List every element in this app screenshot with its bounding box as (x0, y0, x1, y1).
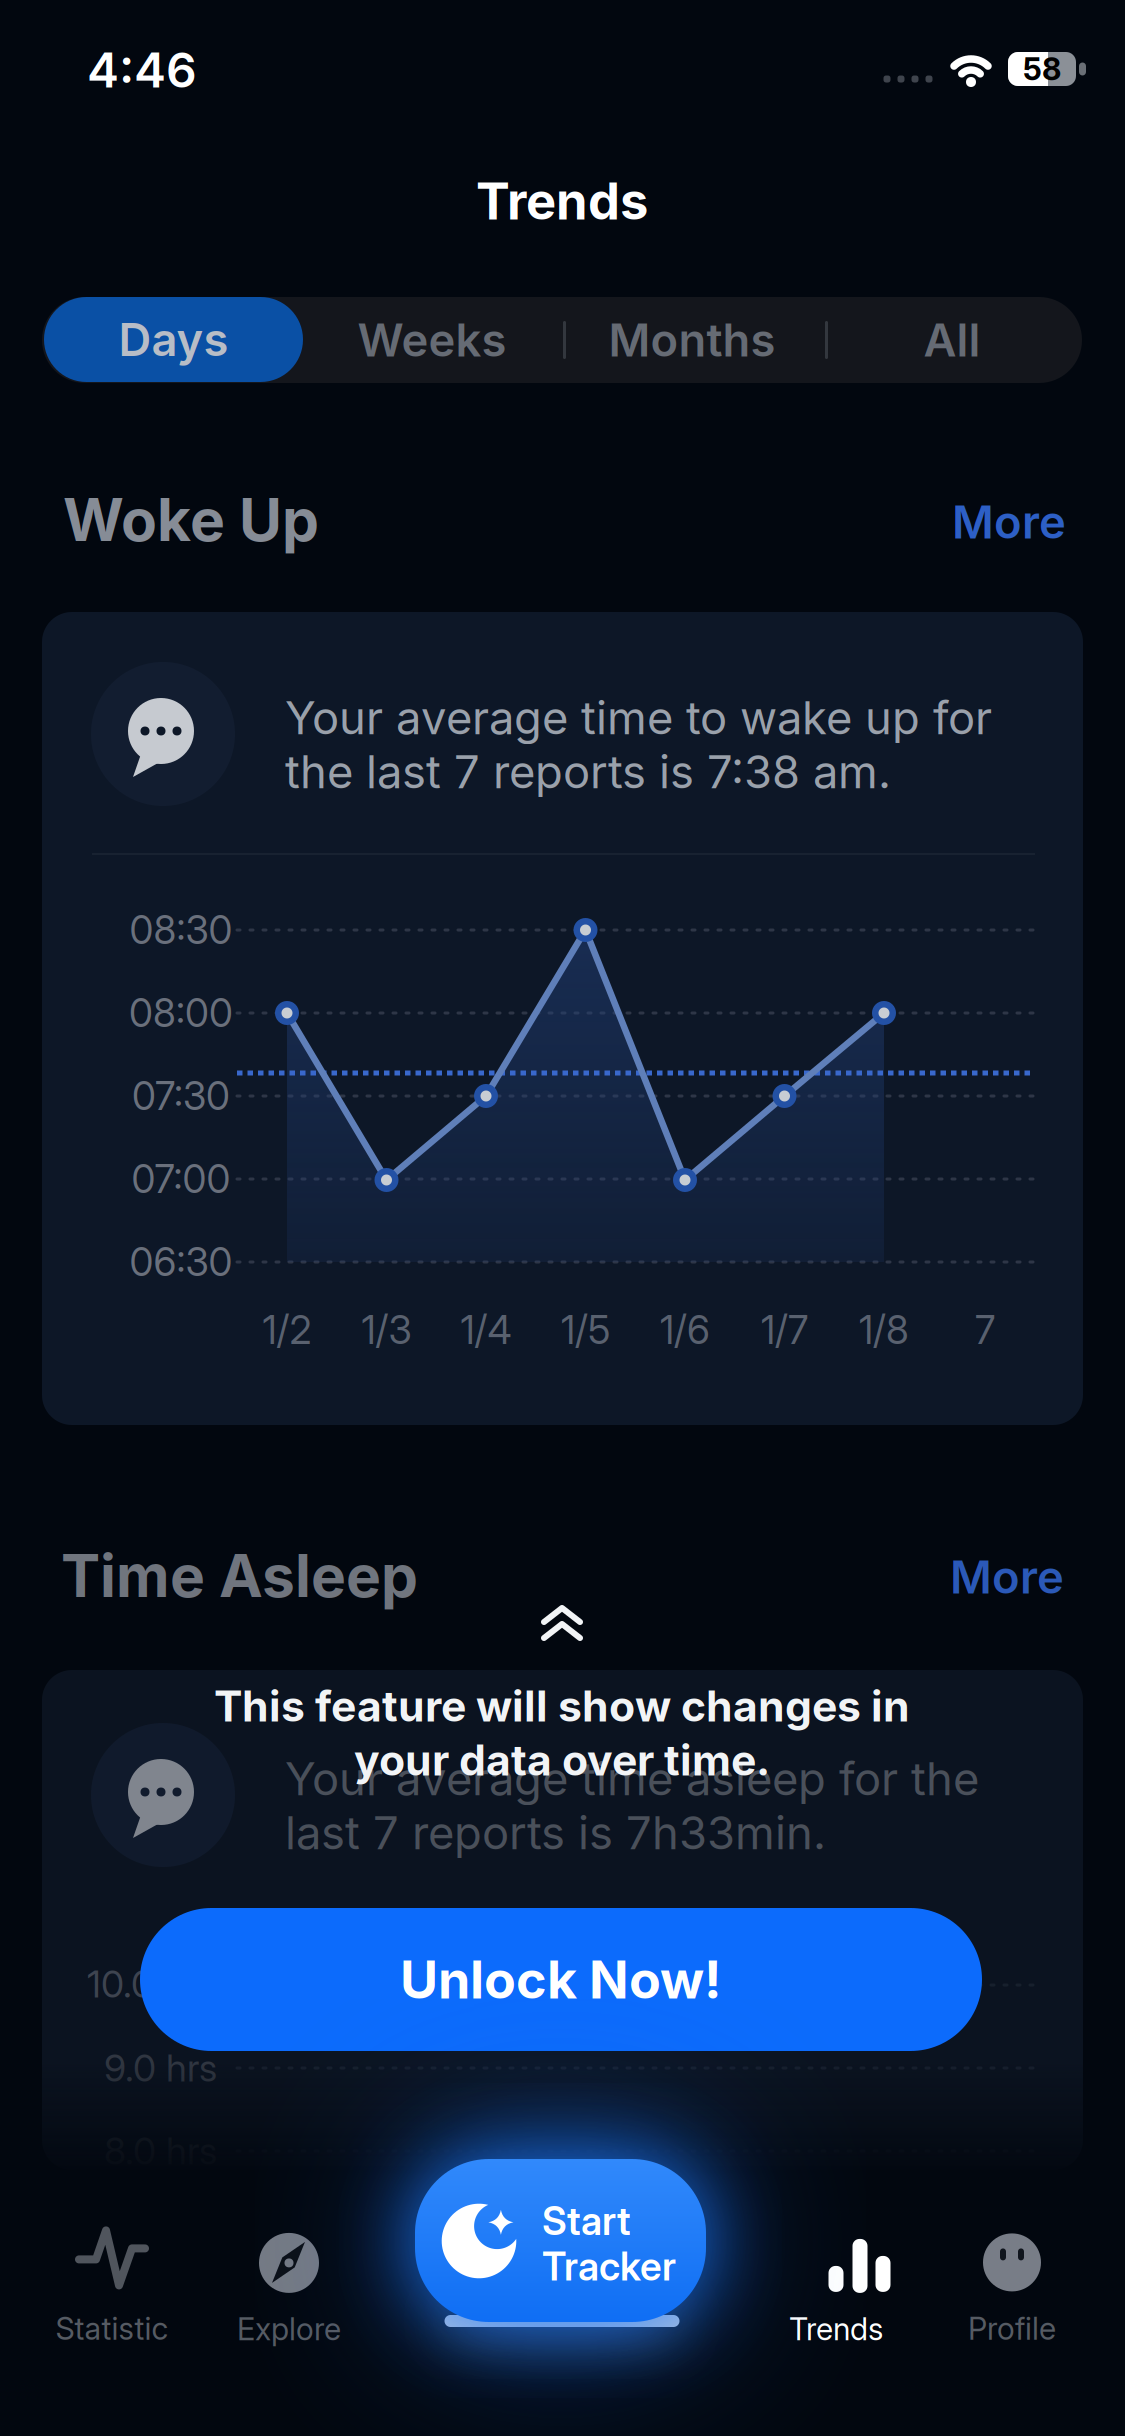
button[interactable]: Statistic (55, 2225, 168, 2347)
staticText: 1/6 (660, 1307, 710, 1353)
staticText: 1/3 (361, 1307, 411, 1353)
staticText: More (950, 1550, 1064, 1604)
button[interactable]: Collapse (544, 1608, 580, 1638)
staticText: 1/8 (859, 1307, 909, 1353)
staticText: Explore (237, 2311, 341, 2347)
staticText: Days (118, 313, 228, 366)
staticText: Trends (789, 2311, 883, 2347)
staticText: Weeks (357, 313, 506, 367)
staticText: last 7 reports is 7h33min. (285, 1806, 826, 1859)
button[interactable]: Days (44, 297, 303, 382)
button[interactable]: All (832, 297, 1072, 383)
button[interactable]: Start (415, 2159, 706, 2322)
staticText: This feature will show changes in (214, 1681, 910, 1731)
button[interactable]: Explore (237, 2233, 341, 2347)
staticText: the last 7 reports is 7:38 am. (285, 745, 891, 798)
button[interactable]: Profile (968, 2233, 1056, 2347)
staticText: Unlock Now! (400, 1949, 722, 2010)
staticText: 06:30 (129, 1239, 232, 1285)
staticText: your data over time. (354, 1735, 770, 1785)
staticText: 1/2 (262, 1307, 311, 1353)
staticText: 07:00 (131, 1156, 230, 1202)
staticText: 10.0 hrs (87, 1962, 215, 2006)
staticText: Start (542, 2198, 631, 2244)
staticText: Profile (968, 2310, 1056, 2347)
staticText: All (923, 313, 980, 367)
staticText: 1/5 (561, 1307, 610, 1353)
staticText: 07:30 (132, 1073, 230, 1119)
staticText: More (952, 495, 1066, 549)
button[interactable]: Trends (789, 2239, 883, 2347)
staticText: Trends (476, 171, 648, 231)
staticText: 4:46 (87, 42, 197, 98)
button[interactable]: Months (572, 297, 812, 383)
staticText: Time Asleep (61, 1541, 418, 1610)
staticText: 08:00 (129, 990, 233, 1036)
staticText: 9.0 hrs (104, 2046, 217, 2090)
staticText: Statistic (55, 2310, 168, 2347)
staticText: Woke Up (63, 485, 319, 554)
staticText: 08:30 (129, 907, 232, 953)
staticText: Your average time asleep for the (285, 1752, 979, 1805)
staticText: 1/4 (460, 1307, 511, 1353)
button[interactable]: Unlock Now! (140, 1908, 982, 2051)
staticText: Tracker (542, 2244, 676, 2289)
staticText: 7 (975, 1307, 995, 1353)
button[interactable]: More (950, 1550, 1064, 1604)
staticText: Months (608, 313, 775, 367)
button[interactable]: More (952, 495, 1066, 549)
button[interactable]: Weeks (312, 297, 552, 383)
staticText: 1/7 (761, 1307, 808, 1353)
staticText: 58 (1023, 51, 1061, 87)
staticText: Your average time to wake up for (285, 691, 992, 744)
